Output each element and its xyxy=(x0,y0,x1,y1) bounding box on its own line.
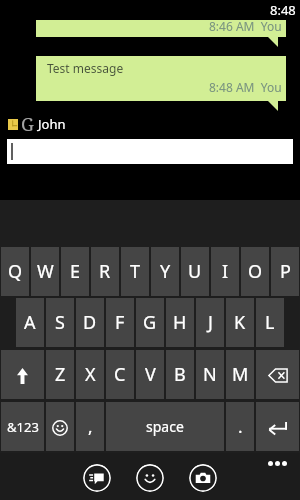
button[interactable]: P xyxy=(271,247,299,296)
button[interactable]: G xyxy=(136,298,164,347)
button[interactable]: E xyxy=(61,247,89,296)
staticText: G xyxy=(143,310,157,335)
button[interactable]: C xyxy=(106,350,134,399)
staticText: T xyxy=(130,259,141,284)
button[interactable]: U xyxy=(181,247,209,296)
staticText: 8:46 AM You xyxy=(209,20,282,34)
button[interactable]: A xyxy=(16,298,44,347)
staticText: G xyxy=(21,112,34,137)
staticText: A xyxy=(24,310,36,335)
button[interactable]: Test message xyxy=(36,56,286,101)
staticText: S xyxy=(55,310,65,335)
button[interactable] xyxy=(1,350,44,399)
staticText: &123 xyxy=(7,418,39,436)
button[interactable]: L xyxy=(256,298,284,347)
staticText: I xyxy=(222,259,229,284)
button[interactable]: 8:46 AM You xyxy=(36,20,286,37)
staticText: D xyxy=(83,310,97,335)
button[interactable]: G xyxy=(8,111,66,136)
button[interactable]: &123 xyxy=(1,402,44,451)
staticText: H xyxy=(173,310,187,335)
staticText: John xyxy=(38,115,66,133)
staticText: J xyxy=(208,310,213,335)
button[interactable]: Y xyxy=(151,247,179,296)
staticText: N xyxy=(203,362,217,387)
button[interactable]: Q xyxy=(1,247,29,296)
button[interactable]: O xyxy=(241,247,269,296)
staticText: Z xyxy=(55,362,66,387)
staticText: L xyxy=(265,310,275,335)
staticText: 8:48 xyxy=(270,1,296,19)
staticText: O xyxy=(248,259,263,284)
button[interactable]: Camera xyxy=(189,464,217,492)
staticText: E xyxy=(70,259,81,284)
button[interactable]: N xyxy=(196,350,224,399)
button[interactable] xyxy=(7,139,293,164)
button[interactable]: M xyxy=(226,350,254,399)
button[interactable]: , xyxy=(76,402,104,451)
staticText: F xyxy=(115,310,125,335)
staticText: P xyxy=(280,259,291,284)
staticText: , xyxy=(88,415,93,438)
button[interactable]: R xyxy=(91,247,119,296)
staticText: Test message xyxy=(47,60,124,76)
staticText: K xyxy=(234,310,246,335)
button[interactable]: I xyxy=(211,247,239,296)
staticText: C xyxy=(114,362,126,387)
staticText: V xyxy=(145,362,156,387)
staticText: X xyxy=(85,362,96,387)
button[interactable]: . xyxy=(226,402,254,451)
button[interactable]: F xyxy=(106,298,134,347)
staticText: R xyxy=(99,259,111,284)
button[interactable]: Z xyxy=(46,350,74,399)
button[interactable]: W xyxy=(31,247,59,296)
button[interactable]: X xyxy=(76,350,104,399)
staticText: Y xyxy=(160,259,171,284)
button[interactable] xyxy=(46,402,74,451)
staticText: 8:48 AM You xyxy=(209,79,282,95)
staticText: W xyxy=(37,259,54,284)
button[interactable]: J xyxy=(196,298,224,347)
button[interactable]: Quick text xyxy=(83,464,111,492)
staticText: M xyxy=(232,362,249,387)
button[interactable]: H xyxy=(166,298,194,347)
button[interactable]: space xyxy=(106,402,224,451)
button[interactable] xyxy=(256,350,299,399)
button[interactable]: Emoji xyxy=(136,464,164,492)
button[interactable]: B xyxy=(166,350,194,399)
button[interactable]: D xyxy=(76,298,104,347)
button[interactable]: V xyxy=(136,350,164,399)
button[interactable]: T xyxy=(121,247,149,296)
button[interactable] xyxy=(256,402,299,451)
staticText: Q xyxy=(8,259,23,284)
staticText: U xyxy=(188,259,202,284)
button[interactable]: K xyxy=(226,298,254,347)
button[interactable]: More options xyxy=(268,461,287,466)
button[interactable]: S xyxy=(46,298,74,347)
staticText: . xyxy=(238,415,243,438)
staticText: B xyxy=(174,362,186,387)
staticText: space xyxy=(146,417,184,436)
